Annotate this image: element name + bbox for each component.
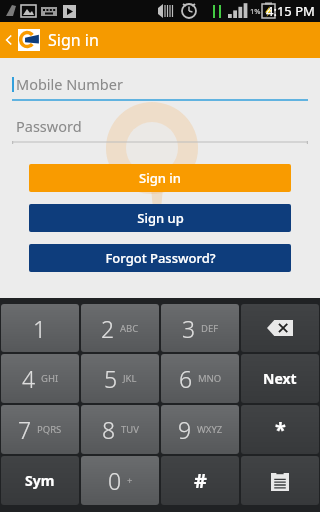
staticText: ABC xyxy=(120,322,139,335)
button[interactable]: Sign up xyxy=(29,204,291,232)
button[interactable]: Sign in xyxy=(29,164,291,192)
staticText: MNO xyxy=(198,372,222,385)
staticText: GHI xyxy=(41,372,59,385)
staticText: Sign up xyxy=(137,209,184,227)
staticText: 3 xyxy=(182,313,196,344)
button[interactable]: 6 xyxy=(161,354,239,403)
button[interactable]: Clipboard xyxy=(241,456,319,505)
staticText: 5 xyxy=(104,363,118,394)
staticText: DEF xyxy=(201,322,219,335)
staticText: Mobile Number xyxy=(16,74,123,94)
button[interactable]: Password xyxy=(12,116,308,144)
button[interactable]: 3 xyxy=(161,304,239,352)
button[interactable]: Sym xyxy=(1,456,79,505)
staticText: 9 xyxy=(178,414,192,445)
staticText: Next xyxy=(263,369,297,388)
staticText: 4:15 PM xyxy=(266,2,315,20)
button[interactable]: 4 xyxy=(1,354,79,403)
staticText: * xyxy=(275,416,286,443)
staticText: Sign in xyxy=(48,29,99,51)
button[interactable]: 0 xyxy=(81,456,159,505)
button[interactable]: 8 xyxy=(81,405,159,454)
button[interactable]: 2 xyxy=(81,304,159,352)
staticText: WXYZ xyxy=(197,423,223,436)
staticText: JKL xyxy=(123,372,137,385)
staticText: Forgot Password? xyxy=(105,249,216,267)
staticText: 4 xyxy=(22,363,36,394)
staticText: + xyxy=(127,474,133,487)
staticText: TUV xyxy=(121,423,139,436)
button[interactable]: * xyxy=(241,405,319,454)
staticText: PQRS xyxy=(37,423,62,436)
button[interactable]: Forgot Password? xyxy=(29,244,291,272)
button[interactable]: # xyxy=(161,456,239,505)
staticText: Password xyxy=(16,116,82,136)
button[interactable]: Mobile Number xyxy=(12,74,308,102)
staticText: 7 xyxy=(18,414,32,445)
staticText: Sign in xyxy=(139,169,181,187)
staticText: 1% xyxy=(250,6,261,16)
button[interactable]: Back xyxy=(0,22,18,58)
button[interactable]: Next xyxy=(241,354,319,403)
button[interactable]: 7 xyxy=(1,405,79,454)
staticText: 2 xyxy=(101,313,115,344)
button[interactable]: 1 xyxy=(1,304,79,352)
button[interactable]: 9 xyxy=(161,405,239,454)
staticText: Sym xyxy=(25,471,55,490)
staticText: 0 xyxy=(108,465,122,496)
staticText: 6 xyxy=(179,363,193,394)
button[interactable]: 5 xyxy=(81,354,159,403)
staticText: 1 xyxy=(33,313,47,344)
staticText: # xyxy=(194,467,207,494)
staticText: 8 xyxy=(102,414,116,445)
button[interactable]: Backspace xyxy=(241,304,319,352)
